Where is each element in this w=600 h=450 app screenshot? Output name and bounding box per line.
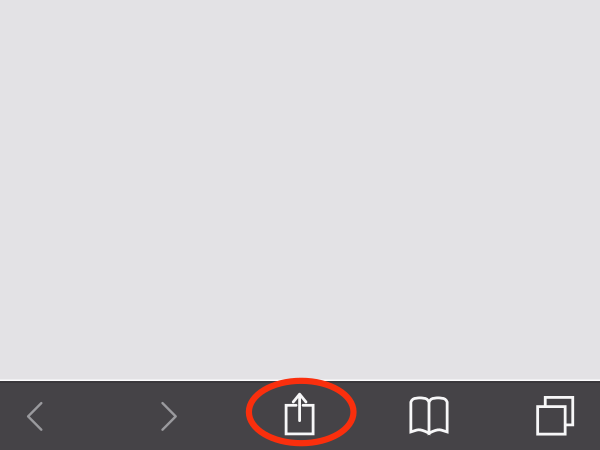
button[interactable]: Bookmarks xyxy=(394,385,464,447)
button[interactable]: Forward xyxy=(136,385,202,447)
button[interactable]: Back xyxy=(2,385,68,447)
button[interactable]: Share xyxy=(262,382,338,446)
button[interactable]: Tabs xyxy=(520,385,590,447)
